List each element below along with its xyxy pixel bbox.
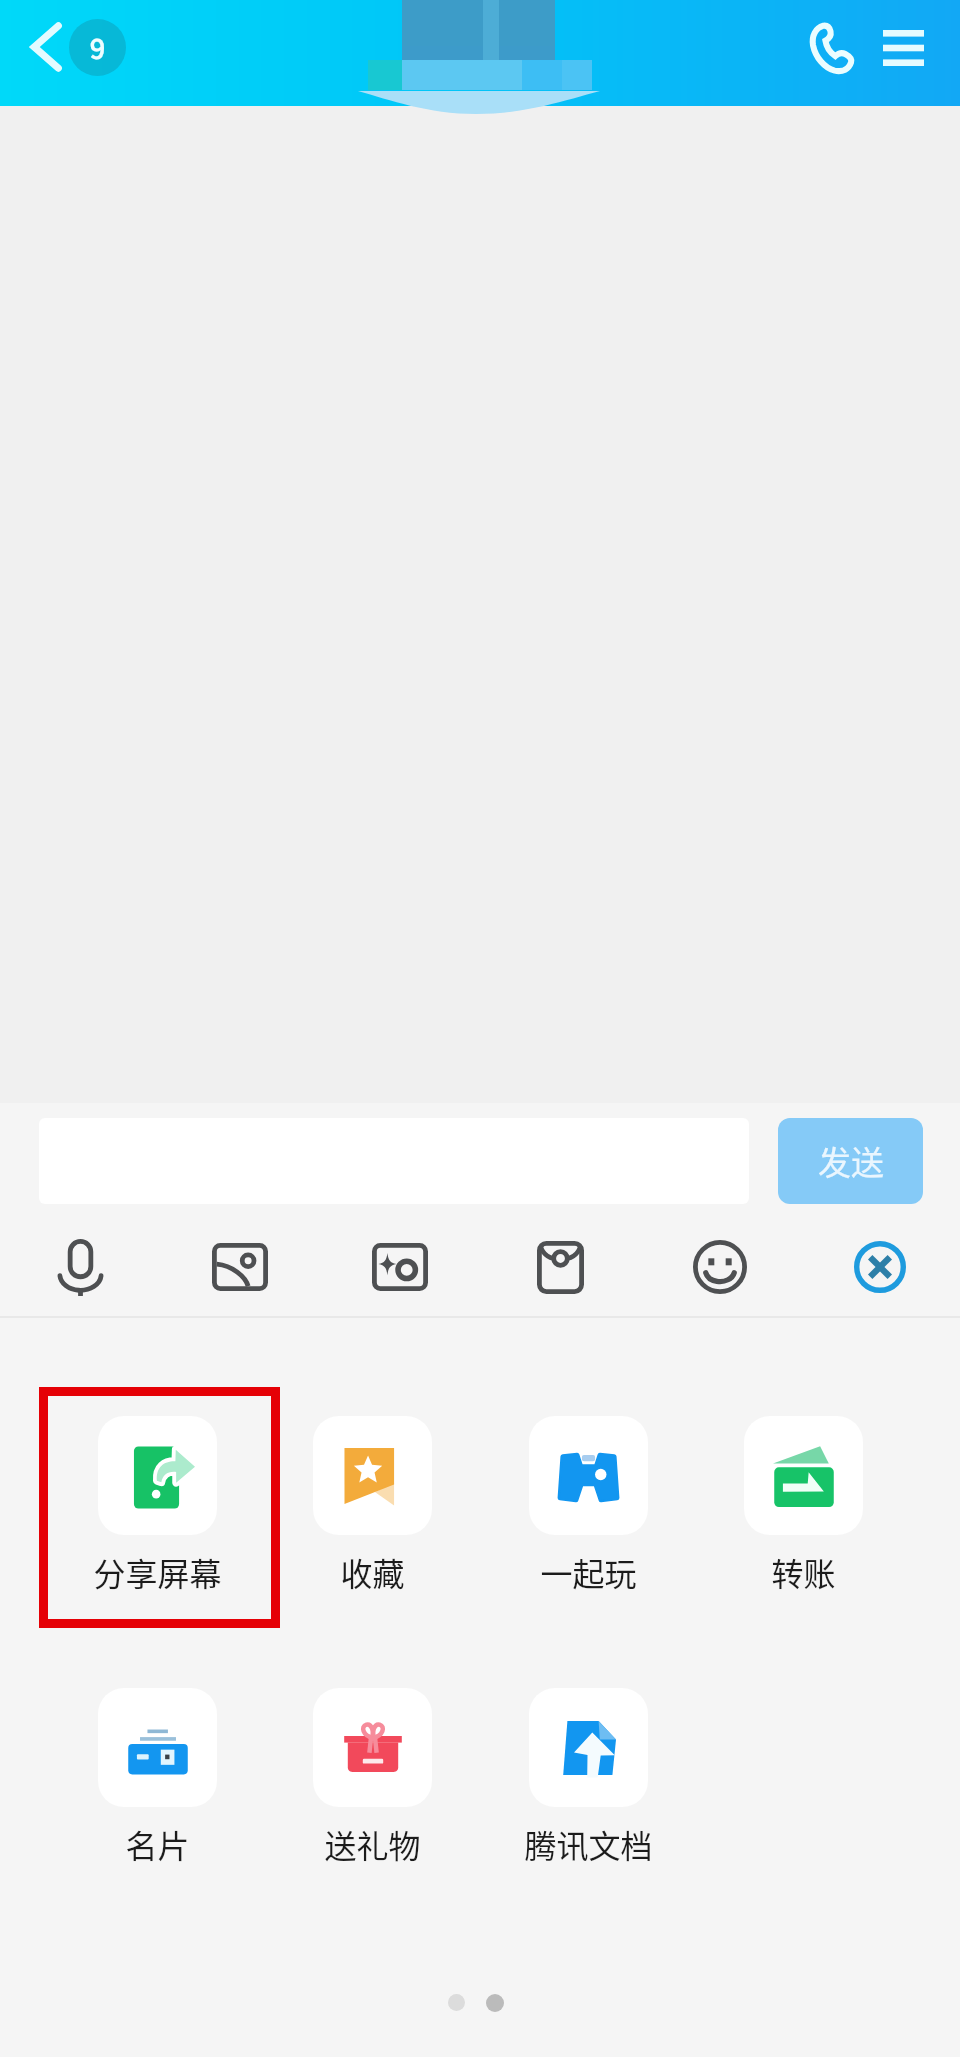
button[interactable]: Back: [14, 0, 140, 94]
staticText: 收藏: [340, 1549, 405, 1595]
button[interactable]: Call: [796, 12, 868, 84]
button[interactable]: 转账: [723, 1404, 883, 1609]
staticText: 发送: [818, 1137, 884, 1185]
staticText: 9: [90, 28, 105, 67]
staticText: 名片: [125, 1821, 190, 1867]
button[interactable]: Emoji: [675, 1222, 765, 1312]
staticText: 转账: [771, 1549, 836, 1595]
button[interactable]: 一起玩: [508, 1404, 668, 1609]
button[interactable]: 分享屏幕: [77, 1404, 237, 1609]
button[interactable]: Menu: [869, 14, 937, 82]
button[interactable]: Camera: [355, 1222, 445, 1312]
button[interactable]: 发送: [778, 1118, 923, 1204]
staticText: 分享屏幕: [93, 1549, 222, 1595]
button[interactable]: Voice message: [35, 1222, 125, 1312]
staticText: 送礼物: [324, 1821, 421, 1867]
button[interactable]: 送礼物: [292, 1676, 452, 1881]
button[interactable]: 收藏: [292, 1404, 452, 1609]
button[interactable]: Close: [835, 1222, 925, 1312]
button[interactable]: 腾讯文档: [508, 1676, 668, 1881]
button[interactable]: 名片: [77, 1676, 237, 1881]
staticText: 一起玩: [540, 1549, 637, 1595]
button[interactable]: Photo: [195, 1222, 285, 1312]
staticText: 腾讯文档: [524, 1821, 653, 1867]
button[interactable]: Red packet: [515, 1222, 605, 1312]
